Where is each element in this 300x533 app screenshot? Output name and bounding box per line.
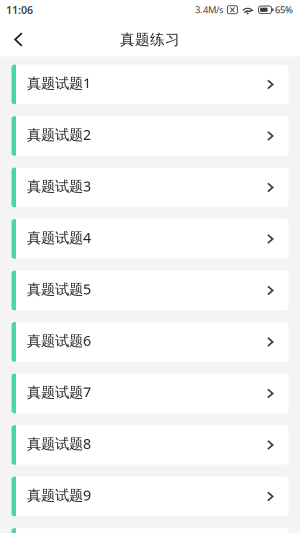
staticText: 真题试题9 — [27, 485, 91, 505]
staticText: 真题试题6 — [27, 331, 91, 350]
button[interactable]: 真题试题8 — [11, 425, 288, 465]
staticText: 真题试题5 — [27, 279, 91, 299]
button[interactable]: 真题试题5 — [11, 271, 288, 310]
staticText: 65% — [275, 4, 293, 16]
staticText: 真题试题3 — [27, 176, 91, 196]
button[interactable]: 真题试题1 — [11, 65, 288, 104]
button[interactable]: 真题试题10 — [11, 528, 288, 533]
staticText: 真题试题4 — [27, 228, 91, 247]
button[interactable]: 真题试题7 — [11, 374, 288, 413]
button[interactable]: 真题试题3 — [11, 168, 288, 207]
button[interactable]: 真题试题4 — [11, 219, 288, 259]
button[interactable]: 真题试题6 — [11, 322, 288, 362]
staticText: 真题试题8 — [27, 434, 91, 453]
staticText: 11:06 — [6, 3, 33, 17]
button[interactable]: Back — [0, 22, 37, 56]
staticText: 3.4M/s — [195, 4, 223, 16]
staticText: 真题试题2 — [27, 125, 91, 144]
button[interactable]: 真题试题2 — [11, 116, 288, 156]
staticText: 真题试题7 — [27, 382, 91, 402]
staticText: 真题试题1 — [27, 73, 91, 93]
button[interactable]: 真题试题9 — [11, 477, 288, 516]
staticText: 真题练习 — [120, 30, 180, 48]
